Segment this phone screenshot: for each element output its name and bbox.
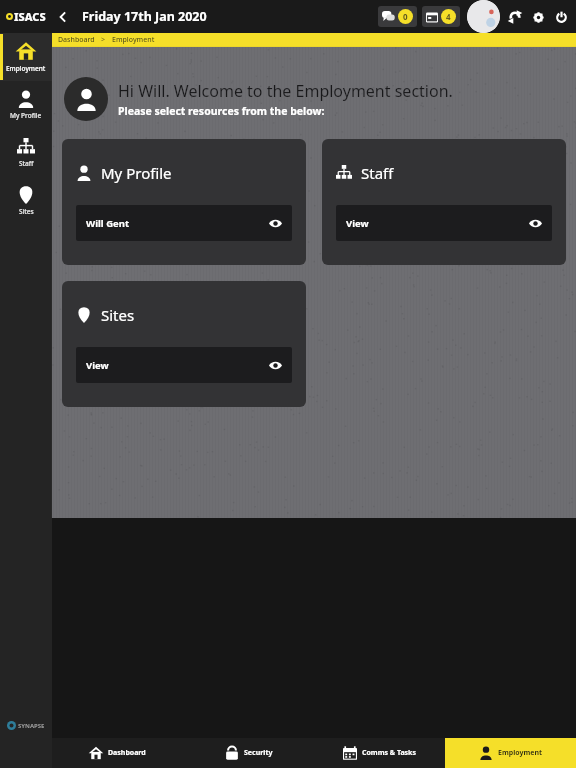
button[interactable]: Profile	[467, 0, 500, 33]
staticText: Staff	[361, 163, 394, 183]
button[interactable]: My Profile	[62, 139, 306, 265]
button[interactable]: View	[76, 347, 292, 383]
staticText: Friday 17th Jan 2020	[82, 8, 207, 25]
button[interactable]: Settings	[529, 8, 547, 26]
staticText: Employment	[112, 35, 155, 45]
button[interactable]: Refresh	[506, 8, 524, 26]
button[interactable]: Staff	[322, 139, 566, 265]
button[interactable]: Employment	[0, 33, 52, 81]
button[interactable]: My Profile	[0, 81, 52, 129]
staticText: >	[101, 35, 106, 45]
staticText: View	[86, 359, 109, 372]
button[interactable]: Comms & Tasks	[314, 738, 445, 768]
staticText: Security	[244, 748, 273, 758]
staticText: Employment	[6, 64, 46, 73]
staticText: Sites	[101, 305, 135, 325]
staticText: 0	[403, 11, 408, 22]
staticText: My Profile	[10, 111, 42, 120]
staticText: My Profile	[101, 163, 172, 183]
button[interactable]: Notifications 4	[422, 6, 460, 27]
button[interactable]: Dashboard	[52, 738, 183, 768]
staticText: 4	[446, 11, 451, 22]
staticText: View	[346, 217, 369, 230]
button[interactable]: Dashboard	[58, 35, 95, 45]
button[interactable]: Notifications 0	[378, 6, 417, 27]
staticText: Will Gent	[86, 217, 130, 230]
button[interactable]: Will Gent	[76, 205, 292, 241]
staticText: Hi Will. Welcome to the Employment secti…	[118, 80, 453, 102]
button[interactable]: Sites	[0, 177, 52, 225]
staticText: SYNAPSE	[18, 722, 45, 730]
button[interactable]: Back	[52, 6, 74, 28]
button[interactable]: Staff	[0, 129, 52, 177]
staticText: Comms & Tasks	[362, 748, 416, 758]
button[interactable]: Employment	[445, 738, 576, 768]
staticText: Staff	[19, 159, 34, 168]
staticText: Dashboard	[108, 748, 146, 758]
button[interactable]: Power	[552, 8, 570, 26]
button[interactable]: View	[336, 205, 552, 241]
button[interactable]: Security	[183, 738, 314, 768]
staticText: Sites	[19, 207, 34, 216]
staticText: Please select resources from the below:	[118, 104, 325, 118]
button[interactable]: Sites	[62, 281, 306, 407]
staticText: ISACS	[14, 9, 46, 24]
staticText: Employment	[498, 748, 543, 758]
